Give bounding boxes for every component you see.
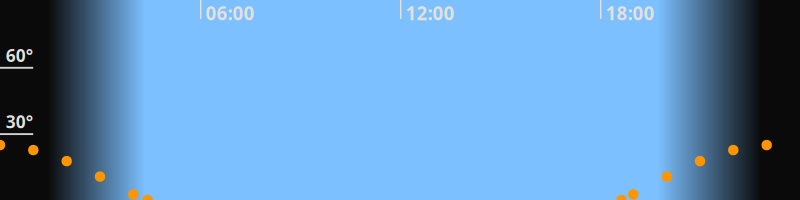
staticText: 60°	[6, 44, 33, 67]
staticText: 18:00	[605, 0, 654, 25]
staticText: 06:00	[205, 0, 254, 25]
staticText: 12:00	[405, 0, 454, 25]
staticText: 30°	[6, 110, 33, 133]
